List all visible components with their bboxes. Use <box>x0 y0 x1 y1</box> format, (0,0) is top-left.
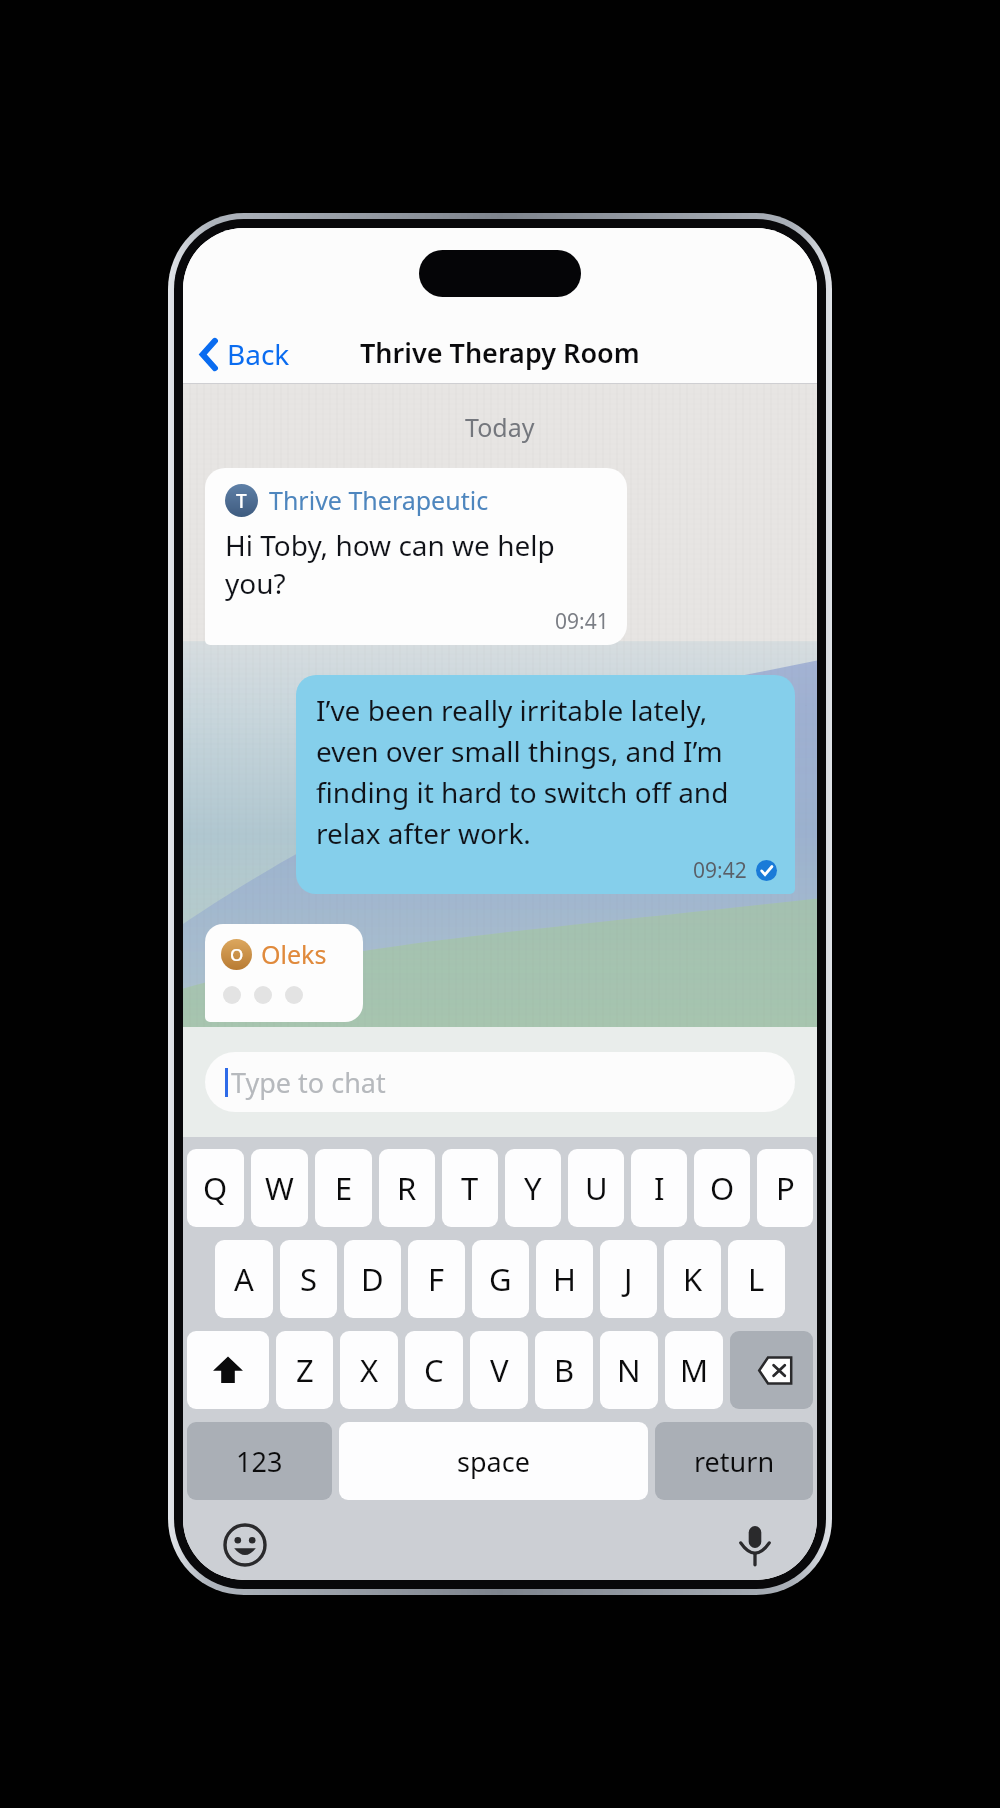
button[interactable]: Q <box>187 1149 244 1227</box>
button[interactable]: V <box>470 1331 528 1409</box>
button[interactable]: T <box>205 468 627 645</box>
staticText: U <box>585 1167 608 1209</box>
button[interactable]: I’ve been really irritable lately, even … <box>296 675 795 894</box>
staticText: N <box>617 1349 641 1391</box>
button[interactable]: Backspace <box>730 1331 813 1409</box>
button[interactable]: D <box>344 1240 401 1318</box>
staticText: V <box>490 1349 509 1391</box>
staticText: Q <box>203 1167 228 1209</box>
staticText: H <box>553 1258 576 1300</box>
button[interactable]: X <box>340 1331 398 1409</box>
staticText: W <box>265 1167 294 1209</box>
button[interactable]: W <box>251 1149 308 1227</box>
staticText: I’ve been really irritable lately, even … <box>316 691 777 852</box>
staticText: P <box>776 1167 795 1209</box>
button[interactable]: G <box>472 1240 529 1318</box>
button[interactable]: O <box>205 924 363 1022</box>
button[interactable]: A <box>215 1240 273 1318</box>
button[interactable]: return <box>655 1422 813 1500</box>
staticText: X <box>360 1349 379 1391</box>
staticText: L <box>748 1258 765 1300</box>
button[interactable]: U <box>568 1149 624 1227</box>
button[interactable]: P <box>757 1149 813 1227</box>
staticText: I <box>654 1167 665 1209</box>
staticText: T <box>461 1167 479 1209</box>
staticText: F <box>428 1258 445 1300</box>
staticText: O <box>230 943 244 966</box>
staticText: J <box>624 1258 633 1300</box>
button[interactable]: L <box>728 1240 785 1318</box>
staticText: Thrive Therapeutic <box>269 483 489 517</box>
staticText: return <box>694 1443 775 1480</box>
button[interactable]: M <box>665 1331 723 1409</box>
button[interactable]: Back <box>191 326 300 382</box>
button[interactable]: 123 <box>187 1422 332 1500</box>
button[interactable]: S <box>280 1240 337 1318</box>
staticText: Today <box>465 410 535 444</box>
button[interactable]: H <box>536 1240 593 1318</box>
staticText: C <box>424 1349 444 1391</box>
staticText: B <box>554 1349 575 1391</box>
staticText: Thrive Therapy Room <box>360 334 640 371</box>
staticText: Type to chat <box>231 1064 386 1101</box>
button[interactable]: R <box>379 1149 435 1227</box>
staticText: K <box>683 1258 703 1300</box>
button[interactable]: Type to chat <box>205 1052 795 1112</box>
button[interactable]: K <box>664 1240 721 1318</box>
staticText: Y <box>524 1167 542 1209</box>
button[interactable]: Y <box>505 1149 561 1227</box>
staticText: 123 <box>236 1443 283 1480</box>
staticText: A <box>234 1258 254 1300</box>
staticText: O <box>710 1167 735 1209</box>
staticText: E <box>335 1167 353 1209</box>
staticText: 09:41 <box>555 607 609 636</box>
button[interactable]: F <box>408 1240 465 1318</box>
button[interactable]: Z <box>276 1331 333 1409</box>
button[interactable]: N <box>600 1331 658 1409</box>
staticText: R <box>397 1167 417 1209</box>
staticText: Back <box>227 335 290 373</box>
button[interactable]: J <box>600 1240 657 1318</box>
button[interactable]: I <box>631 1149 687 1227</box>
staticText: Hi Toby, how can we help you? <box>225 526 609 602</box>
staticText: 09:42 <box>693 856 747 885</box>
button[interactable]: T <box>442 1149 498 1227</box>
staticText: T <box>236 488 247 514</box>
staticText: Z <box>296 1349 314 1391</box>
button[interactable]: B <box>535 1331 593 1409</box>
button[interactable]: space <box>339 1422 648 1500</box>
button[interactable]: O <box>694 1149 750 1227</box>
button[interactable]: C <box>405 1331 463 1409</box>
button[interactable]: Shift <box>187 1331 269 1409</box>
staticText: D <box>361 1258 384 1300</box>
button[interactable]: Dictation <box>727 1517 783 1573</box>
staticText: Oleks <box>261 937 327 971</box>
staticText: space <box>457 1443 530 1480</box>
staticText: S <box>300 1258 318 1300</box>
button[interactable]: E <box>315 1149 372 1227</box>
staticText: M <box>680 1349 709 1391</box>
staticText: G <box>489 1258 512 1300</box>
button[interactable]: Emoji <box>217 1517 273 1573</box>
